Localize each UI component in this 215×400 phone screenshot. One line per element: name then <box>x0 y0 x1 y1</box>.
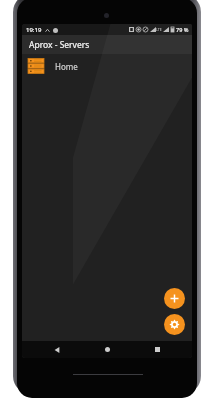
button[interactable]: Home <box>92 341 122 358</box>
staticText: Aprox - Servers <box>29 39 90 51</box>
button[interactable]: Home <box>22 54 192 78</box>
button[interactable]: Settings <box>164 314 185 335</box>
button[interactable]: Back <box>42 341 72 358</box>
button[interactable]: Add server <box>164 288 185 309</box>
staticText: LTE <box>156 27 162 32</box>
button[interactable]: Recent apps <box>142 341 172 358</box>
staticText: 79 % <box>176 26 189 33</box>
staticText: Home <box>55 61 78 72</box>
staticText: 19:19 <box>26 26 42 34</box>
